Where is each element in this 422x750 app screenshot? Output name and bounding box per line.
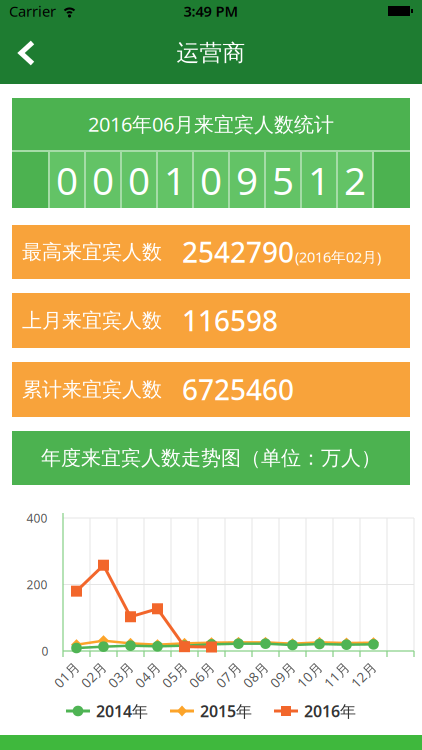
- staticText: 01月: [52, 666, 81, 684]
- staticText: 运营商: [176, 39, 245, 67]
- staticText: 200: [26, 576, 47, 592]
- staticText: 5: [272, 154, 294, 206]
- staticText: 年度来宜宾人数走势图（单位：万人）: [41, 446, 381, 470]
- staticText: 0: [200, 154, 222, 206]
- staticText: 3:49 PM: [183, 1, 238, 21]
- staticText: 6725460: [182, 371, 294, 408]
- staticText: 116598: [182, 302, 278, 339]
- staticText: 04月: [133, 666, 162, 684]
- staticText: (2016年02月): [295, 247, 381, 267]
- staticText: 05月: [160, 666, 189, 684]
- staticText: 0: [128, 154, 150, 206]
- staticText: 1: [164, 154, 186, 206]
- staticText: 10月: [295, 666, 324, 684]
- staticText: 2: [344, 154, 366, 206]
- staticText: 02月: [79, 666, 108, 684]
- staticText: 2015年: [200, 700, 252, 722]
- staticText: 2014年: [96, 700, 148, 722]
- staticText: 1: [308, 154, 330, 206]
- staticText: 11月: [322, 666, 351, 684]
- staticText: 06月: [187, 666, 216, 684]
- staticText: 08月: [241, 666, 270, 684]
- staticText: 03月: [106, 666, 135, 684]
- staticText: 9: [236, 154, 258, 206]
- staticText: 最高来宜宾人数: [22, 240, 162, 264]
- staticText: 400: [26, 510, 47, 526]
- staticText: 2016年06月来宜宾人数统计: [88, 111, 334, 137]
- staticText: 2542790: [182, 233, 294, 271]
- staticText: 0: [92, 154, 114, 206]
- staticText: 0: [56, 154, 78, 206]
- staticText: 0: [41, 643, 48, 659]
- staticText: Carrier: [9, 1, 56, 21]
- staticText: 累计来宜宾人数: [22, 377, 162, 402]
- staticText: 上月来宜宾人数: [22, 308, 162, 333]
- staticText: 07月: [214, 666, 243, 684]
- staticText: 2016年: [304, 700, 356, 722]
- staticText: 09月: [268, 666, 297, 684]
- staticText: 12月: [349, 666, 378, 684]
